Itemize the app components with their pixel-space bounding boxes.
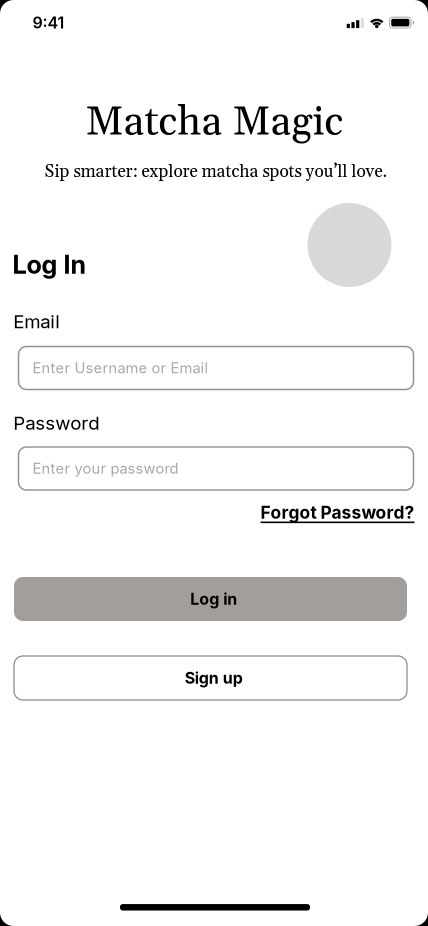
- staticText: Email: [13, 310, 60, 332]
- staticText: Enter Username or Email: [32, 359, 208, 377]
- button[interactable]: Log in: [14, 577, 407, 621]
- textField[interactable]: Enter Username or Email: [32, 359, 413, 377]
- staticText: Enter your password: [32, 460, 178, 477]
- staticText: Password: [13, 412, 99, 434]
- button[interactable]: Sign up: [14, 656, 407, 700]
- staticText: Enter Username or Email: [32, 359, 208, 377]
- staticText: Matcha Magic: [85, 97, 343, 148]
- button[interactable]: Forgot Password?: [260, 502, 414, 523]
- staticText: Log in: [190, 590, 237, 608]
- staticText: Sip smarter: explore matcha spots you’ll…: [44, 161, 387, 183]
- staticText: 9:41: [32, 13, 64, 32]
- staticText: Log In: [12, 250, 86, 279]
- staticText: Sign up: [185, 669, 243, 687]
- staticText: Enter your password: [32, 460, 178, 477]
- secureTextField[interactable]: Enter your password: [32, 460, 413, 477]
- staticText: Forgot Password?: [260, 502, 414, 523]
